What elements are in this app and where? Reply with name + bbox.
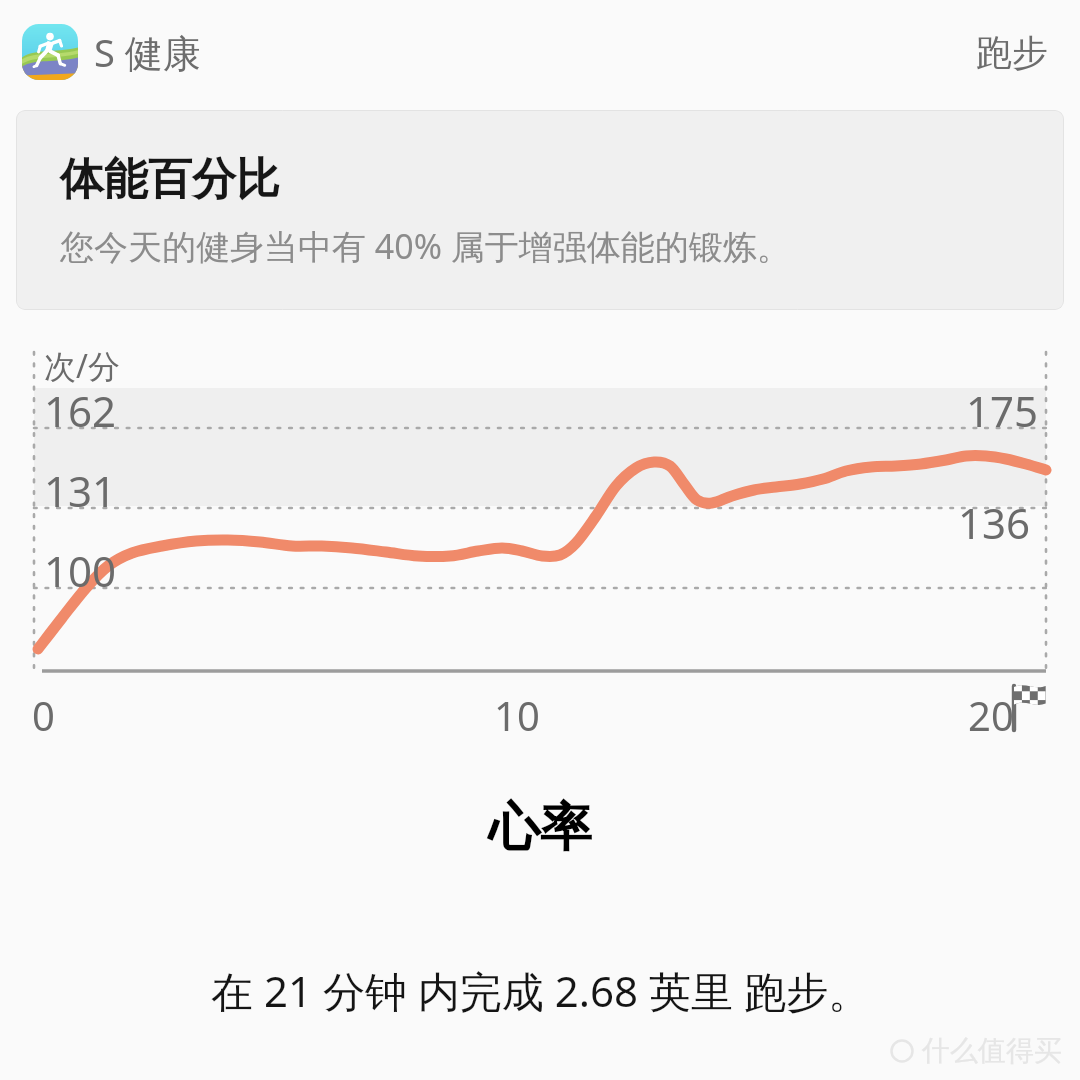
other: S Health: [22, 24, 78, 80]
staticText: S 健康: [94, 26, 201, 78]
staticText: 心率: [488, 795, 592, 861]
staticText: 跑步: [976, 30, 1048, 75]
staticText: 131: [44, 462, 117, 519]
staticText: 100: [44, 542, 117, 599]
button[interactable]: 体能百分比: [16, 110, 1064, 310]
button[interactable]: S Health: [0, 0, 1080, 104]
staticText: 162: [44, 382, 117, 439]
staticText: 在 21 分钟 内完成 2.68 英里 跑步。: [211, 962, 870, 1019]
staticText: 175: [966, 382, 1039, 439]
staticText: 10: [494, 688, 540, 742]
staticText: 您今天的健身当中有 40% 属于增强体能的锻炼。: [60, 223, 791, 269]
staticText: 136: [958, 494, 1031, 551]
staticText: 体能百分比: [60, 152, 280, 207]
staticText: 次/分: [44, 344, 120, 388]
staticText: 什么值得买: [922, 1033, 1062, 1068]
staticText: 20: [968, 688, 1014, 742]
staticText: 0: [32, 688, 55, 742]
